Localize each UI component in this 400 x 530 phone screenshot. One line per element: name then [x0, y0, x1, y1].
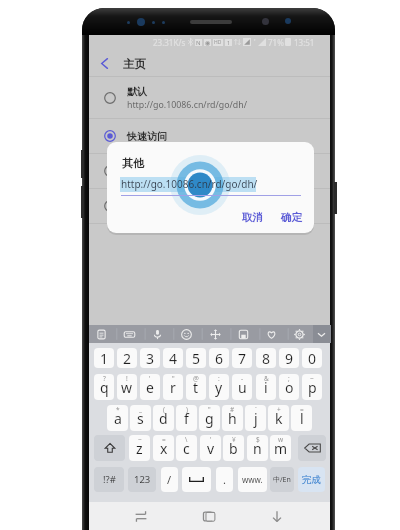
button[interactable]: 8 [256, 348, 276, 368]
staticText: r [170, 378, 176, 397]
button[interactable]: 9 [279, 348, 299, 368]
button[interactable]: Clipboard [88, 325, 114, 343]
staticText: v [207, 439, 215, 458]
button[interactable]: w [270, 435, 291, 461]
button[interactable]: Shift [94, 435, 125, 461]
staticText: " [208, 405, 211, 414]
button[interactable]: Recent apps [119, 502, 163, 530]
button[interactable]: 快速访问 [89, 119, 330, 153]
button[interactable]: 确定 [275, 207, 307, 227]
button[interactable]: www. [238, 467, 267, 492]
button[interactable]: # [222, 405, 243, 431]
staticText: 8 [262, 349, 271, 368]
staticText: w [121, 378, 133, 397]
staticText: www. [242, 474, 263, 485]
button[interactable]: ! [117, 374, 137, 400]
button[interactable]: Save [230, 325, 256, 343]
button[interactable]: " [163, 374, 183, 400]
staticText: 主页 [123, 57, 146, 71]
button[interactable]: Settings [286, 325, 312, 343]
staticText: s [137, 409, 144, 428]
button[interactable]: \ [176, 435, 197, 461]
button[interactable]: = [153, 435, 174, 461]
staticText: a [114, 409, 122, 428]
button[interactable]: 完成 [298, 467, 325, 492]
staticText: http://go.10086.cn/rd/go/dh/ [127, 99, 247, 111]
button[interactable] [89, 154, 330, 188]
staticText: e [146, 378, 154, 397]
staticText: N [196, 39, 201, 46]
button[interactable]: ( [153, 405, 174, 431]
staticText: 2 [123, 349, 132, 368]
button[interactable]: Move keyboard [202, 325, 228, 343]
button[interactable]: 默认 [89, 77, 330, 118]
staticText: 默认 [127, 85, 147, 98]
staticText: + [277, 405, 281, 414]
button[interactable]: 6 [209, 348, 229, 368]
staticText: m [274, 439, 288, 458]
button[interactable]: $ [247, 435, 268, 461]
staticText: ◉ [205, 39, 211, 46]
button[interactable]: ~ [302, 374, 322, 400]
button[interactable]: Voice input [144, 325, 170, 343]
staticText: ! [126, 374, 128, 383]
staticText: h [228, 409, 237, 428]
button[interactable]: : [209, 374, 229, 400]
button[interactable]: ' [200, 435, 221, 461]
button[interactable]: 4 [163, 348, 183, 368]
button[interactable]: . [216, 467, 233, 492]
button[interactable]: Backspace [298, 435, 326, 461]
staticText: u [238, 378, 247, 397]
button[interactable]: Emoji [173, 325, 199, 343]
button[interactable]: / [161, 467, 178, 492]
button[interactable]: 取消 [236, 207, 268, 227]
button[interactable]: - [232, 374, 252, 400]
staticText: 7 [238, 349, 247, 368]
button[interactable]: Space [182, 467, 211, 492]
staticText: @ [193, 374, 199, 383]
staticText: t [193, 378, 199, 397]
staticText: 6 [215, 349, 224, 368]
button[interactable]: * [107, 405, 128, 431]
button[interactable]: = [291, 405, 312, 431]
button[interactable]: Home [187, 502, 231, 530]
button[interactable]: Hide keyboard [308, 325, 334, 343]
staticText: ~ [138, 435, 142, 444]
button[interactable]: ` [245, 405, 266, 431]
button[interactable]: 2 [117, 348, 137, 368]
button[interactable]: 中/En [270, 467, 294, 492]
button[interactable]: 3 [140, 348, 160, 368]
button[interactable]: 0 [302, 348, 322, 368]
button[interactable]: 7 [232, 348, 252, 368]
button[interactable]: ' [140, 374, 160, 400]
button[interactable] [89, 189, 330, 223]
button[interactable]: + [268, 405, 289, 431]
staticText: x [160, 439, 168, 458]
staticText: ~ [310, 374, 314, 383]
button[interactable]: Back [94, 49, 114, 78]
button[interactable]: Keyboard [116, 325, 142, 343]
staticText: b [229, 439, 238, 458]
staticText: 快速访问 [127, 130, 167, 143]
staticText: 0 [308, 349, 317, 368]
staticText: ' [210, 435, 212, 444]
button[interactable]: ¥ [223, 435, 244, 461]
staticText: p [308, 378, 317, 397]
button[interactable]: ~ [129, 435, 150, 461]
button[interactable]: & [256, 374, 276, 400]
button[interactable]: 1 [94, 348, 114, 368]
staticText: 23.31K/s [153, 37, 186, 48]
button[interactable]: Favorites [258, 325, 284, 343]
button[interactable]: Back [255, 502, 299, 530]
button[interactable]: ? [94, 374, 114, 400]
button[interactable]: ) [176, 405, 197, 431]
staticText: 4 [169, 349, 178, 368]
button[interactable]: !?# [94, 467, 124, 492]
button[interactable]: ; [279, 374, 299, 400]
staticText: w [278, 435, 284, 444]
button[interactable]: @ [186, 374, 206, 400]
button[interactable]: 5 [186, 348, 206, 368]
button[interactable]: 123 [128, 467, 156, 492]
button[interactable]: " [199, 405, 220, 431]
button[interactable]: _ [130, 405, 151, 431]
